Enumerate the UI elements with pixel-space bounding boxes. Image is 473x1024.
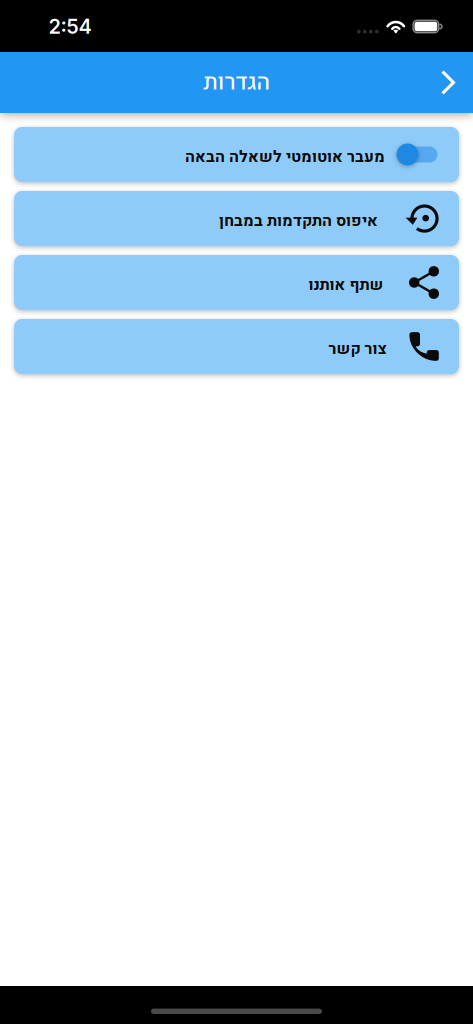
staticText: שתף אותנו [308,273,383,297]
button[interactable]: מעבר אוטומטי לשאלה הבאה [14,127,459,182]
staticText: צור קשר [328,337,386,361]
staticText: 2:54 [48,14,91,39]
button[interactable]: איפוס התקדמות במבחן [14,191,459,246]
staticText: הגדרות [203,66,270,99]
button[interactable]: צור קשר [14,319,459,374]
button[interactable]: שתף אותנו [14,255,459,310]
button[interactable]: Back [431,60,465,104]
staticText: איפוס התקדמות במבחן [219,209,378,233]
staticText: מעבר אוטומטי לשאלה הבאה [184,145,384,169]
